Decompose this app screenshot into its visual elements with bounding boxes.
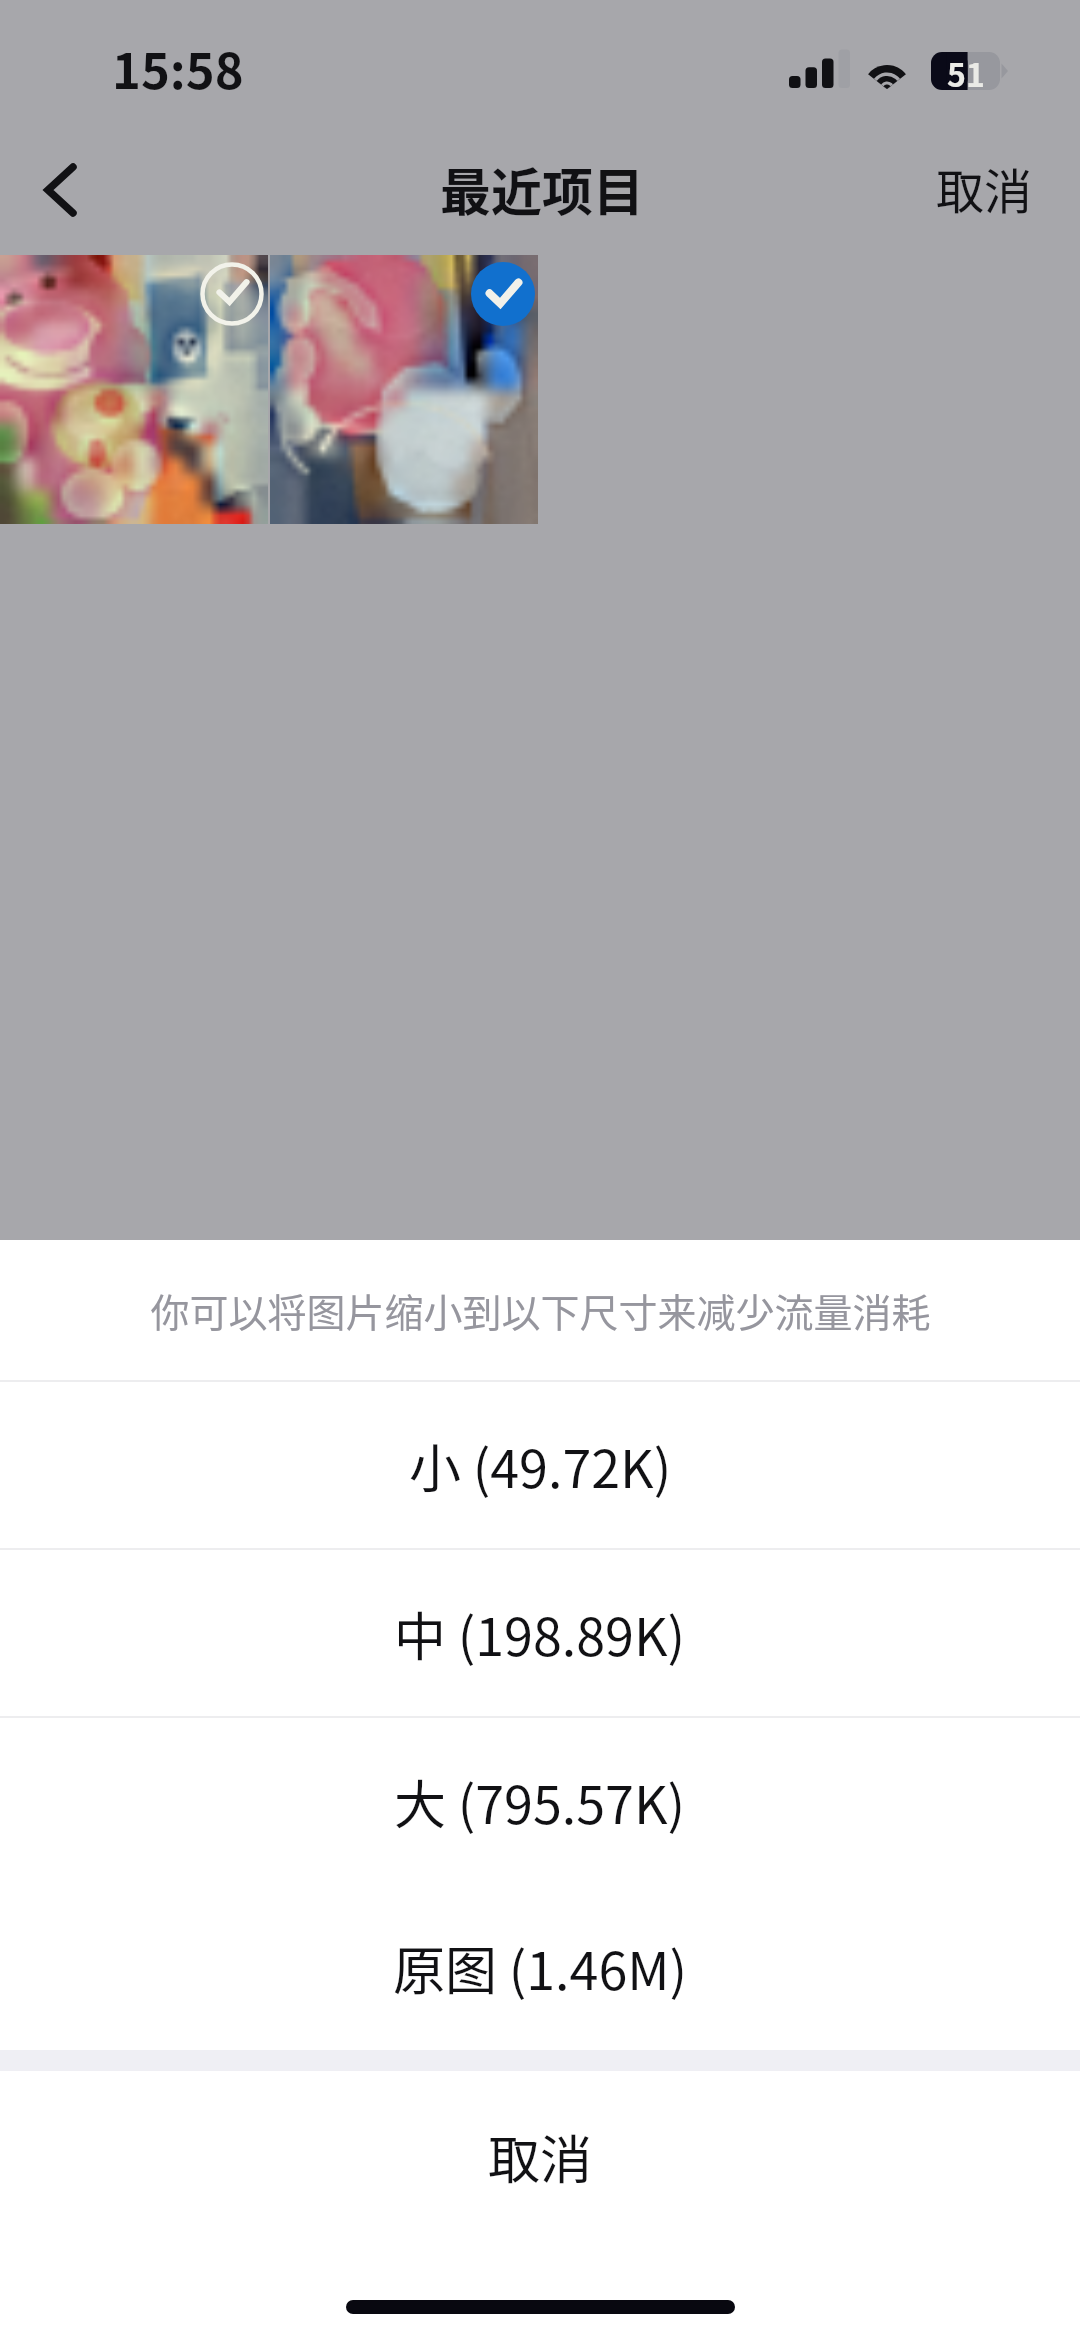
button[interactable]: 取消 <box>889 133 1080 243</box>
staticText: 小 (49.72K) <box>409 1428 672 1503</box>
staticText: 你可以将图片缩小到以下尺寸来减少流量消耗 <box>150 1282 931 1338</box>
button[interactable]: 大 (795.57K) <box>0 1718 1080 1884</box>
staticText: 大 (795.57K) <box>394 1764 686 1839</box>
staticText: 15:58 <box>112 32 244 103</box>
button[interactable]: 原图 (1.46M) <box>0 1884 1080 2050</box>
button[interactable]: 中 (198.89K) <box>0 1550 1080 1716</box>
staticText: 取消 <box>488 2119 593 2194</box>
staticText: 最近项目 <box>440 152 645 226</box>
staticText: 原图 (1.46M) <box>393 1930 688 2005</box>
staticText: 中 (198.89K) <box>394 1596 686 1671</box>
staticText: 51 <box>947 50 985 96</box>
button[interactable]: Back <box>0 135 110 245</box>
button[interactable]: 小 (49.72K) <box>0 1382 1080 1548</box>
button[interactable]: Photo 1, not selected <box>0 255 268 524</box>
button[interactable]: Photo 2, selected <box>270 255 538 524</box>
button[interactable]: 取消 <box>0 2071 1080 2241</box>
staticText: 取消 <box>936 153 1033 223</box>
